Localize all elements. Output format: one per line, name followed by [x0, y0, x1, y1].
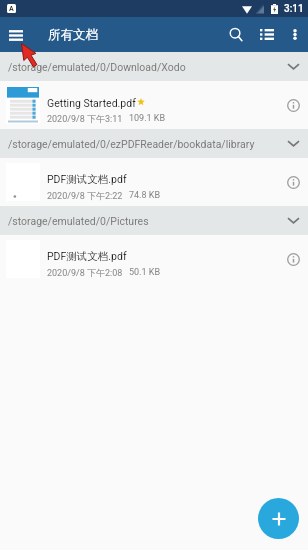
staticText: 109.1 KB: [129, 113, 166, 124]
staticText: 2020/9/8 下午2:08: [47, 267, 123, 278]
staticText: /storage/emulated/0/Download/Xodo: [8, 61, 284, 73]
button[interactable]: Search: [223, 17, 253, 52]
button[interactable]: /storage/emulated/0/Download/Xodo: [0, 52, 308, 81]
staticText: /storage/emulated/0/ezPDFReader/bookdata…: [8, 138, 284, 150]
button[interactable]: Open navigation drawer: [0, 19, 32, 51]
staticText: 2020/9/8 下午2:22: [47, 190, 123, 201]
button[interactable]: PDF测试文档.pdf: [0, 158, 308, 206]
button[interactable]: Change list view: [253, 17, 281, 52]
staticText: 50.1 KB: [129, 267, 161, 278]
button[interactable]: /storage/emulated/0/ezPDFReader/bookdata…: [0, 129, 308, 158]
button[interactable]: Getting Started.pdf: [0, 81, 308, 129]
button[interactable]: PDF测试文档.pdf: [0, 235, 308, 283]
staticText: PDF测试文档.pdf: [47, 250, 127, 263]
staticText: 2020/9/8 下午3:11: [47, 113, 123, 124]
staticText: A: [9, 5, 14, 13]
staticText: 3:11: [284, 3, 304, 15]
button[interactable]: /storage/emulated/0/Pictures: [0, 206, 308, 235]
button[interactable]: File info: [278, 90, 308, 120]
button[interactable]: More options: [281, 17, 307, 52]
button[interactable]: File info: [278, 244, 308, 274]
staticText: Getting Started.pdf: [47, 97, 136, 109]
staticText: /storage/emulated/0/Pictures: [8, 215, 284, 227]
staticText: 74.8 KB: [129, 190, 161, 201]
button[interactable]: File info: [278, 167, 308, 197]
staticText: 所有文档: [48, 27, 98, 43]
staticText: PDF测试文档.pdf: [47, 173, 127, 186]
button[interactable]: Add: [258, 498, 299, 539]
